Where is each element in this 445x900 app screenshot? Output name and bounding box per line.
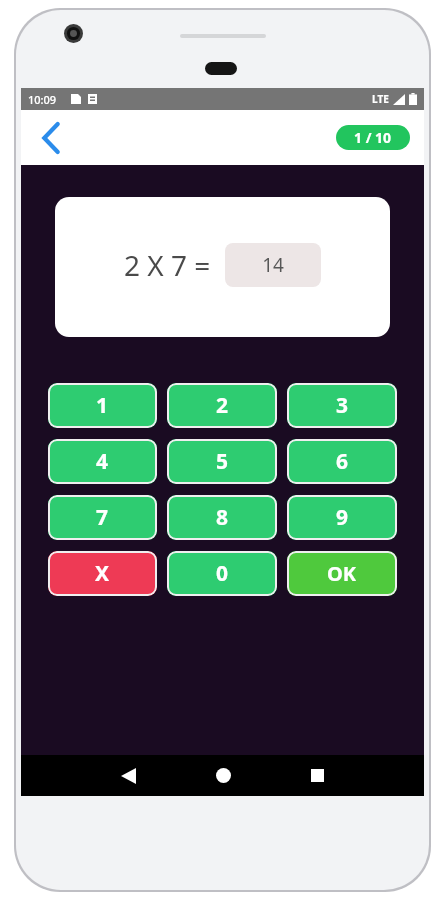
button[interactable]: 1 / 10 <box>336 125 410 150</box>
staticText: 0 <box>216 559 229 588</box>
staticText: 2 <box>216 391 229 420</box>
staticText: 2 X 7 = <box>124 246 211 284</box>
button[interactable]: 2 <box>167 383 277 428</box>
staticText: OK <box>327 560 357 587</box>
staticText: 1 / 10 <box>354 128 392 147</box>
button[interactable]: Back <box>31 118 71 158</box>
button[interactable]: Back <box>81 755 176 796</box>
staticText: 6 <box>336 447 349 476</box>
button[interactable]: 0 <box>167 551 277 596</box>
staticText: LTE <box>372 92 389 106</box>
staticText: 1 <box>96 391 109 420</box>
button[interactable]: Recent apps <box>270 755 364 796</box>
button[interactable]: 7 <box>48 495 157 540</box>
button[interactable]: 4 <box>48 439 157 484</box>
button[interactable]: 9 <box>287 495 397 540</box>
staticText: 10:09 <box>28 92 57 107</box>
staticText: 5 <box>216 447 229 476</box>
button[interactable]: X <box>48 551 157 596</box>
staticText: 4 <box>96 447 109 476</box>
staticText: 7 <box>96 503 109 532</box>
button[interactable]: 8 <box>167 495 277 540</box>
button[interactable]: 1 <box>48 383 157 428</box>
button[interactable]: 6 <box>287 439 397 484</box>
staticText: 3 <box>336 391 349 420</box>
staticText: 8 <box>216 503 229 532</box>
button[interactable]: Home <box>176 755 270 796</box>
staticText: 9 <box>336 503 349 532</box>
staticText: 14 <box>262 252 284 278</box>
button[interactable]: 14 <box>225 243 321 287</box>
button[interactable]: 5 <box>167 439 277 484</box>
button[interactable]: OK <box>287 551 397 596</box>
button[interactable]: 3 <box>287 383 397 428</box>
staticText: X <box>95 559 110 588</box>
